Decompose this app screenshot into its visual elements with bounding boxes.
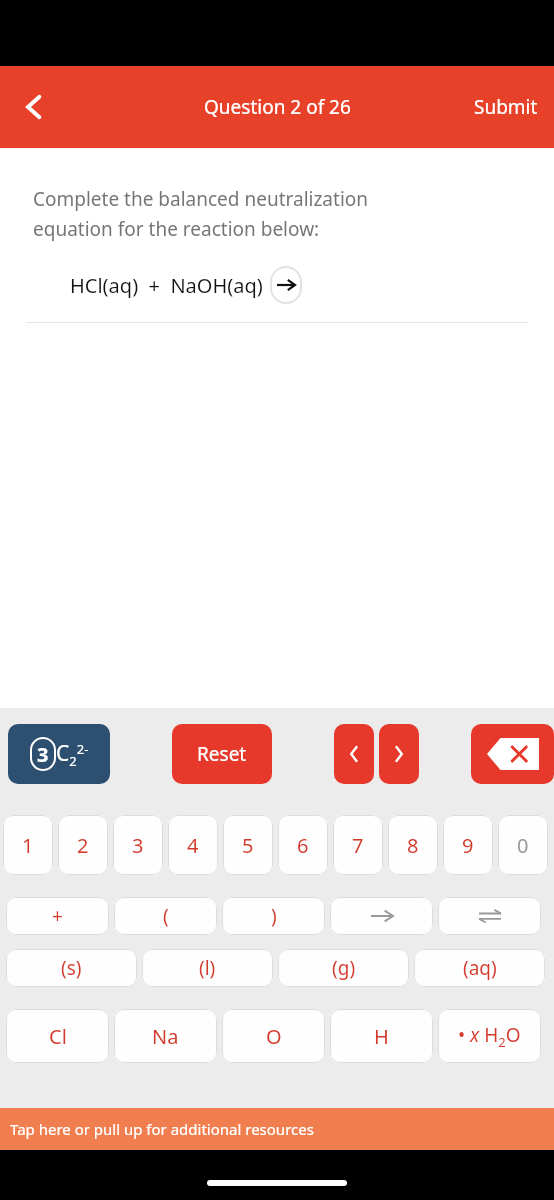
- staticText: 0: [517, 832, 529, 859]
- button[interactable]: Back: [6, 79, 62, 135]
- staticText: ): [271, 903, 277, 929]
- staticText: Submit: [474, 94, 538, 120]
- staticText: C22-: [56, 739, 89, 770]
- button[interactable]: [438, 897, 541, 935]
- button[interactable]: 9: [443, 815, 493, 875]
- button[interactable]: Submit: [474, 94, 538, 120]
- staticText: 7: [352, 832, 364, 859]
- staticText: equation for the reaction below:: [33, 216, 320, 242]
- button[interactable]: 1: [3, 815, 53, 875]
- button[interactable]: Tap here or pull up for additional resou…: [0, 1108, 554, 1150]
- button[interactable]: Backspace: [471, 724, 554, 784]
- staticText: 5: [242, 832, 254, 859]
- button[interactable]: 6: [278, 815, 328, 875]
- staticText: (l): [199, 955, 216, 981]
- staticText: +: [52, 903, 63, 929]
- button[interactable]: ): [222, 897, 325, 935]
- staticText: 4: [187, 832, 199, 859]
- staticText: 6: [297, 832, 309, 859]
- button[interactable]: (aq): [414, 949, 545, 987]
- staticText: HCl(aq) + NaOH(aq): [70, 272, 263, 299]
- staticText: (: [163, 903, 169, 929]
- staticText: 3: [132, 832, 144, 859]
- button[interactable]: (: [114, 897, 217, 935]
- button[interactable]: Cl: [6, 1009, 109, 1063]
- staticText: Tap here or pull up for additional resou…: [10, 1119, 314, 1139]
- button[interactable]: (g): [278, 949, 409, 987]
- staticText: (aq): [463, 955, 497, 981]
- staticText: Complete the balanced neutralization: [33, 186, 369, 212]
- staticText: H: [374, 1023, 389, 1050]
- staticText: (s): [61, 955, 82, 981]
- button[interactable]: O: [222, 1009, 325, 1063]
- staticText: Reset: [197, 741, 247, 767]
- button[interactable]: H: [330, 1009, 433, 1063]
- button[interactable]: • x H2O: [438, 1009, 541, 1063]
- button[interactable]: 2: [58, 815, 108, 875]
- staticText: O: [266, 1023, 282, 1050]
- button[interactable]: [330, 897, 433, 935]
- button[interactable]: 4: [168, 815, 218, 875]
- button[interactable]: 0: [498, 815, 548, 875]
- staticText: Cl: [49, 1023, 67, 1050]
- staticText: Question 2 of 26: [204, 94, 351, 120]
- staticText: 9: [462, 832, 474, 859]
- staticText: 3: [37, 741, 49, 768]
- button[interactable]: 3: [113, 815, 163, 875]
- button[interactable]: 8: [388, 815, 438, 875]
- button[interactable]: (l): [142, 949, 273, 987]
- button[interactable]: [270, 266, 302, 304]
- staticText: 8: [407, 832, 419, 859]
- button[interactable]: 3: [8, 724, 110, 784]
- button[interactable]: Na: [114, 1009, 217, 1063]
- button[interactable]: +: [6, 897, 109, 935]
- button[interactable]: 5: [223, 815, 273, 875]
- button[interactable]: 7: [333, 815, 383, 875]
- button[interactable]: Next: [379, 724, 419, 784]
- staticText: 1: [22, 832, 34, 859]
- staticText: • x H2O: [458, 1022, 521, 1051]
- staticText: Na: [152, 1023, 179, 1050]
- button[interactable]: Previous: [334, 724, 374, 784]
- button[interactable]: Reset: [172, 724, 272, 784]
- staticText: (g): [332, 955, 356, 981]
- staticText: 2: [77, 832, 89, 859]
- button[interactable]: (s): [6, 949, 137, 987]
